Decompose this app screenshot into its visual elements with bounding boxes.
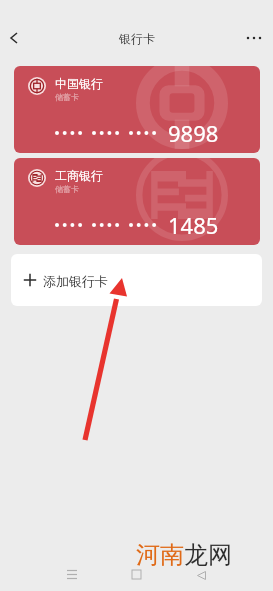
staticText: 9898 <box>168 118 219 148</box>
button[interactable]: Home <box>123 561 150 588</box>
button[interactable]: 工商银行 <box>14 158 260 245</box>
staticText: 工商银行 <box>55 168 103 183</box>
button[interactable]: Back <box>0 20 30 54</box>
staticText: 储蓄卡 <box>55 184 79 194</box>
staticText: 添加银行卡 <box>43 273 108 289</box>
staticText: 中国银行 <box>55 76 103 91</box>
button[interactable]: Recents <box>58 561 85 588</box>
staticText: 储蓄卡 <box>55 92 79 102</box>
staticText: 龙网 <box>184 540 232 570</box>
button[interactable]: 中国银行 <box>14 66 260 153</box>
staticText: 河南 <box>136 540 184 570</box>
button[interactable]: Back <box>188 562 215 589</box>
staticText: 1485 <box>168 210 219 240</box>
button[interactable]: More options <box>237 21 271 55</box>
button[interactable]: 添加银行卡 <box>11 254 262 306</box>
staticText: 银行卡 <box>119 31 155 46</box>
